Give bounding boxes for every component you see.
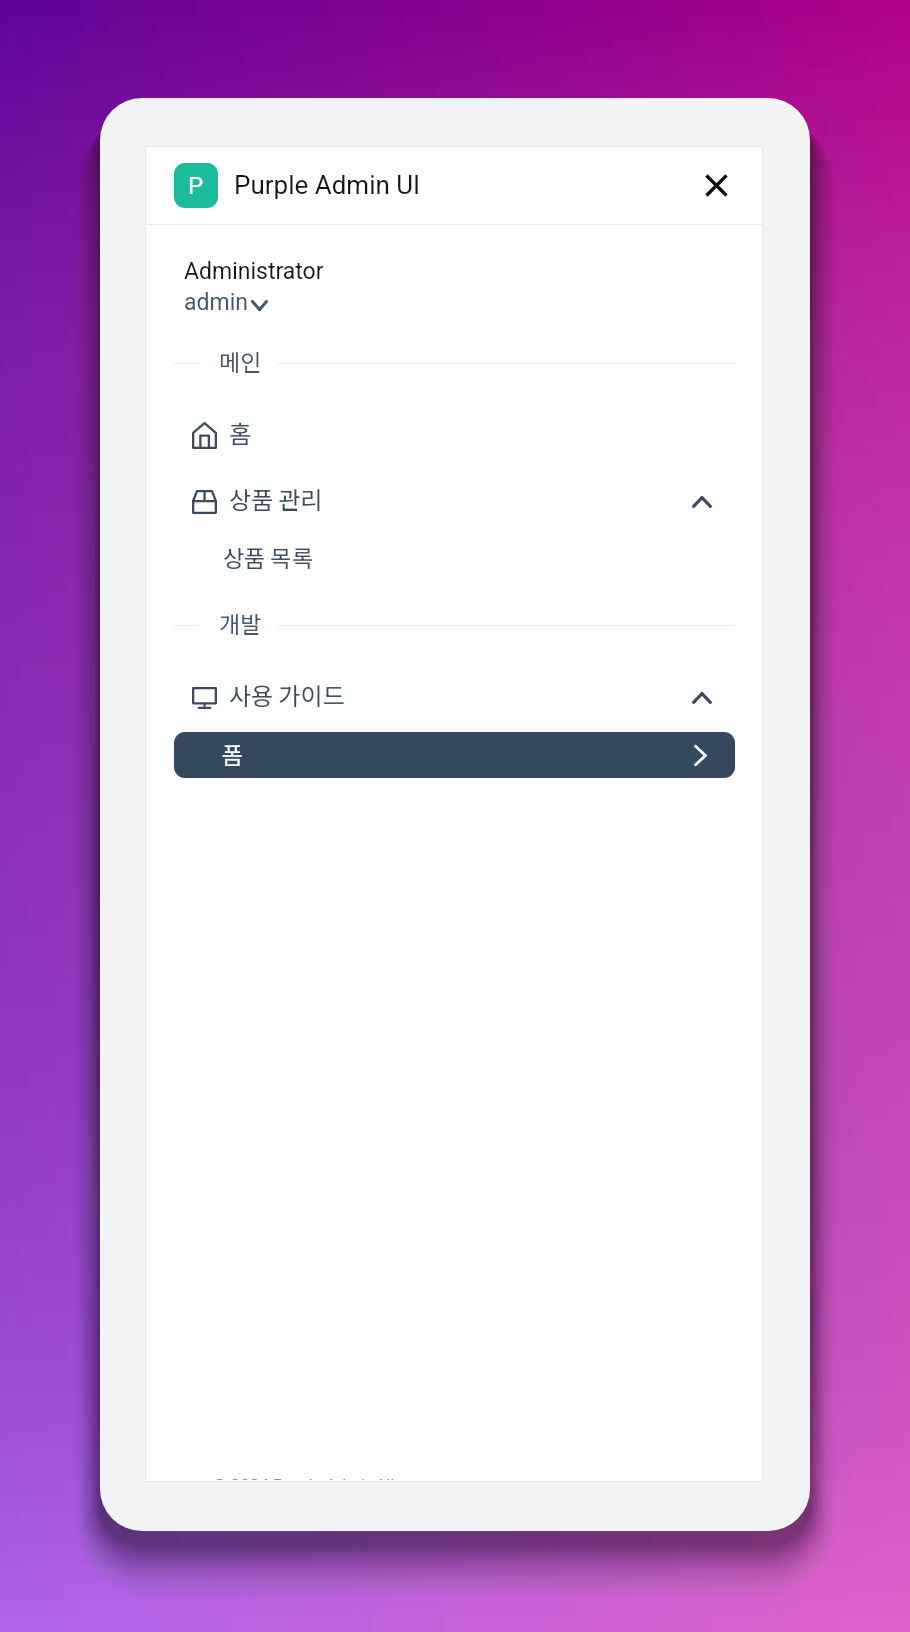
staticText: P xyxy=(188,172,204,200)
button[interactable]: 폼 xyxy=(174,732,735,778)
staticText: Purple Admin UI xyxy=(234,170,421,200)
staticText: 개발 xyxy=(219,606,262,639)
staticText: 메인 xyxy=(219,344,262,377)
staticText: 상품 관리 xyxy=(229,481,323,515)
staticText: 폼 xyxy=(222,737,244,770)
staticText: 상품 목록 xyxy=(223,540,313,572)
staticText: Administrator xyxy=(184,258,324,285)
staticText: admin xyxy=(184,289,248,316)
button[interactable]: Close xyxy=(692,161,740,209)
staticText: © 2024 Purple Admin UI xyxy=(213,1475,395,1480)
staticText: 홈 xyxy=(229,415,252,449)
button[interactable]: 홈 xyxy=(175,418,735,452)
button[interactable]: 상품 목록 xyxy=(175,540,735,572)
button[interactable]: 사용 가이드 xyxy=(175,680,735,714)
staticText: 사용 가이드 xyxy=(229,677,345,711)
button[interactable]: 상품 관리 xyxy=(175,484,735,518)
button[interactable]: admin xyxy=(180,288,276,316)
button[interactable]: Purple Admin UI logo xyxy=(161,151,230,220)
